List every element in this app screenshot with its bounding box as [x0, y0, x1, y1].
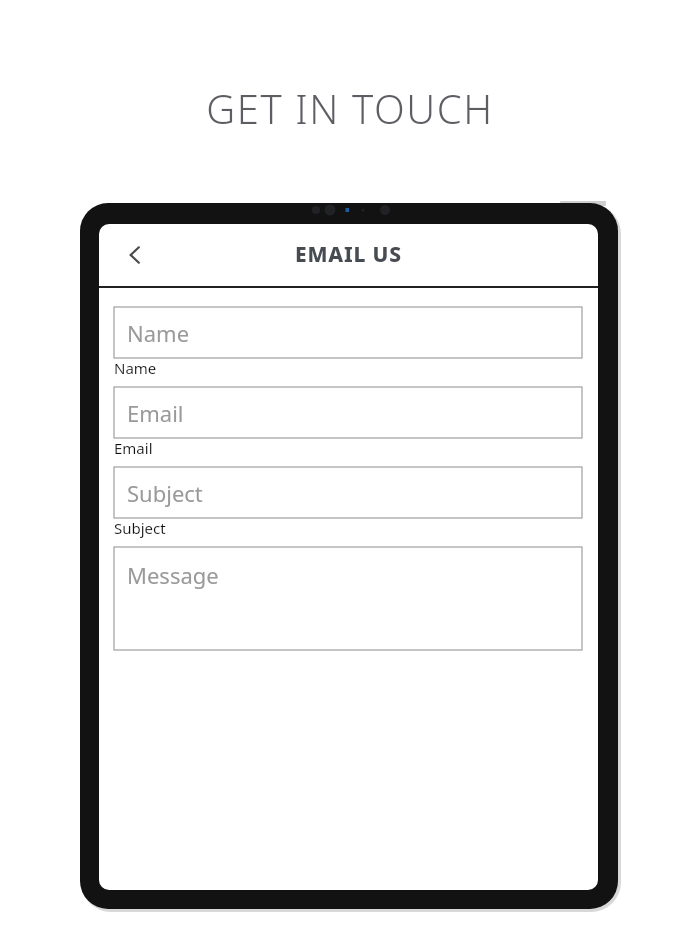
staticText: Email — [127, 398, 184, 428]
staticText: EMAIL US — [295, 240, 402, 269]
button[interactable]: Email — [114, 387, 582, 438]
staticText: Message — [127, 560, 219, 590]
button[interactable]: Name — [114, 307, 582, 358]
staticText: GET IN TOUCH — [0, 81, 700, 135]
button[interactable]: Subject — [114, 467, 582, 518]
staticText: Name — [127, 318, 190, 348]
staticText: Subject — [127, 478, 203, 508]
staticText: Email — [114, 438, 153, 458]
staticText: Subject — [114, 518, 166, 538]
button[interactable]: Back — [115, 235, 155, 275]
button[interactable]: Message — [114, 547, 582, 650]
staticText: Name — [114, 358, 157, 378]
